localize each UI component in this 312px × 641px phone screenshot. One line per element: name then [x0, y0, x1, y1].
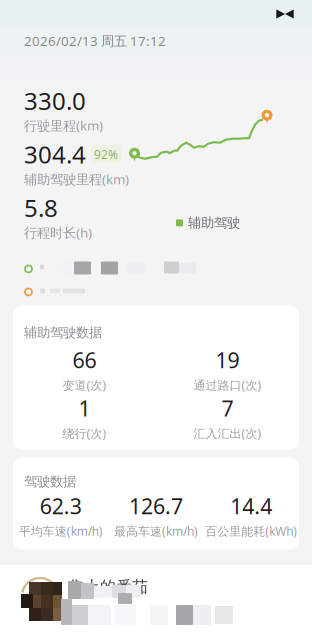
staticText: 焦土的番茄: [68, 577, 148, 597]
staticText: 7: [221, 394, 233, 422]
staticText: 变道(次): [62, 377, 106, 393]
staticText: 驾驶数据: [24, 473, 76, 490]
staticText: 辅助驾驶数据: [24, 324, 102, 341]
staticText: 行驶里程(km): [24, 117, 103, 134]
staticText: 辅助驾驶: [188, 215, 240, 231]
staticText: 行程时长(h): [24, 224, 92, 241]
staticText: 百公里能耗(kWh): [205, 523, 297, 539]
staticText: 62.3: [40, 492, 82, 520]
staticText: 汇入汇出(次): [193, 425, 261, 441]
staticText: 绕行(次): [62, 425, 106, 441]
staticText: 最高车速(km/h): [114, 523, 198, 539]
staticText: 92%: [94, 146, 118, 162]
button[interactable]: 焦土的番茄: [0, 565, 312, 641]
staticText: 14.4: [230, 492, 272, 520]
staticText: 19: [215, 346, 239, 374]
staticText: 2026/02/13 周五 17:12: [24, 32, 166, 50]
staticText: 1: [78, 394, 90, 422]
staticText: 平均车速(km/h): [19, 523, 103, 539]
staticText: 330.0: [24, 85, 86, 117]
staticText: 通过路口(次): [193, 377, 261, 393]
staticText: 辅助驾驶里程(km): [24, 170, 129, 188]
staticText: 66: [72, 346, 96, 374]
button[interactable]: Share: [268, 2, 302, 26]
staticText: 304.4: [24, 138, 86, 170]
staticText: 5.8: [24, 192, 58, 224]
staticText: 126.7: [129, 492, 183, 520]
